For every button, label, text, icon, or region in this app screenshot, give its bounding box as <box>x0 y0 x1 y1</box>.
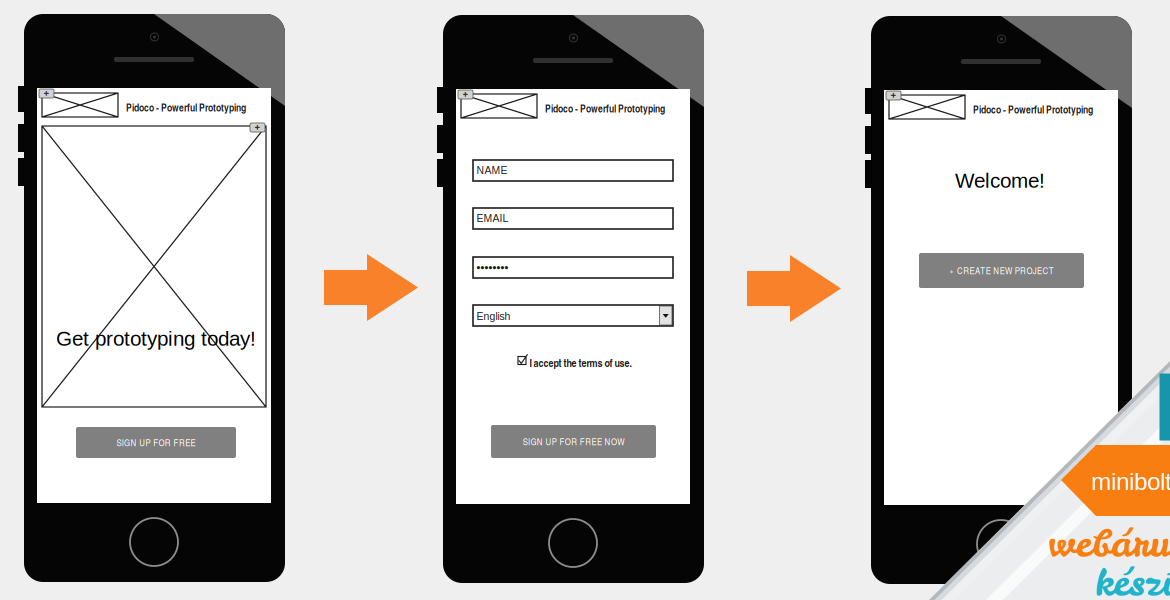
staticText: + <box>890 90 896 101</box>
staticText: Pidoco - Powerful Prototyping <box>545 101 665 116</box>
button[interactable]: •••••••• <box>473 257 673 278</box>
button[interactable]: I accept the terms of use. <box>518 354 630 368</box>
staticText: + <box>462 89 468 100</box>
staticText: Pidoco - Powerful Prototyping <box>126 100 246 115</box>
staticText: I accept the terms of use. <box>529 355 631 370</box>
staticText: készítés <box>1095 557 1170 600</box>
staticText: + <box>43 88 49 99</box>
button[interactable]: NAME <box>473 160 673 181</box>
staticText: Get prototyping today! <box>56 327 256 350</box>
button[interactable]: English <box>473 305 673 326</box>
staticText: minibolt <box>1091 468 1170 495</box>
staticText: EMAIL <box>476 213 508 224</box>
staticText: SIGN UP FOR FREE <box>116 436 196 449</box>
staticText: SIGN UP FOR FREE NOW <box>523 435 624 448</box>
staticText: webáruház <box>1048 518 1170 569</box>
staticText: •••••••• <box>476 261 508 274</box>
staticText: English <box>476 310 510 322</box>
staticText: + CREATE NEW PROJECT <box>949 264 1054 277</box>
button[interactable]: SIGN UP FOR FREE <box>76 427 236 458</box>
staticText: NAME <box>476 165 507 176</box>
staticText: Pidoco - Powerful Prototyping <box>973 102 1093 117</box>
button[interactable]: + CREATE NEW PROJECT <box>919 253 1084 288</box>
staticText: + <box>254 122 260 133</box>
button[interactable]: SIGN UP FOR FREE NOW <box>491 425 656 458</box>
staticText: Welcome! <box>955 169 1045 192</box>
button[interactable]: EMAIL <box>473 208 673 229</box>
